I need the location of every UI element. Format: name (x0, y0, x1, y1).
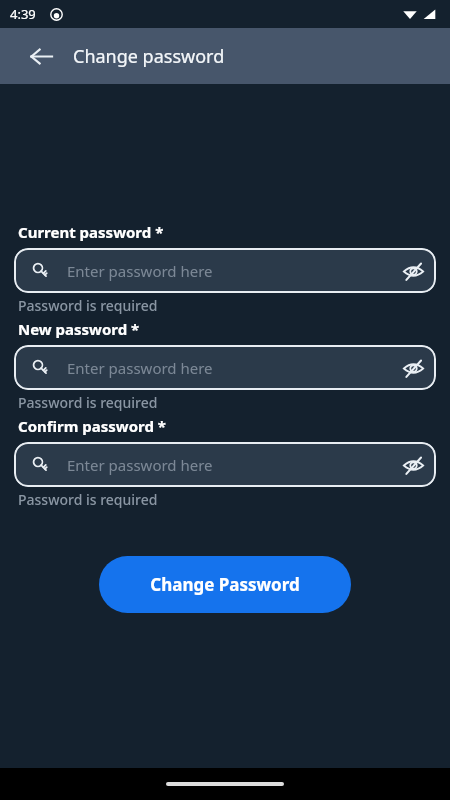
staticText: Password is required (18, 490, 158, 509)
staticText: Enter password here (67, 455, 392, 475)
staticText: Enter password here (67, 261, 392, 281)
button[interactable]: Change Password (99, 556, 351, 613)
staticText: 4:39 (10, 5, 36, 23)
button[interactable]: Back (17, 32, 65, 80)
button[interactable]: Show password (392, 250, 434, 292)
button[interactable]: Show password (392, 444, 434, 486)
staticText: Change Password (150, 573, 300, 596)
button[interactable]: Enter password here (14, 345, 436, 390)
button[interactable]: Enter password here (14, 248, 436, 293)
button[interactable]: Show password (392, 347, 434, 389)
staticText: Enter password here (67, 358, 392, 378)
staticText: Password is required (18, 296, 158, 315)
button[interactable]: Enter password here (14, 442, 436, 487)
staticText: Confirm password * (18, 416, 166, 436)
staticText: New password * (18, 319, 140, 339)
staticText: Current password * (18, 222, 164, 242)
staticText: Change password (73, 44, 225, 69)
staticText: Password is required (18, 393, 158, 412)
